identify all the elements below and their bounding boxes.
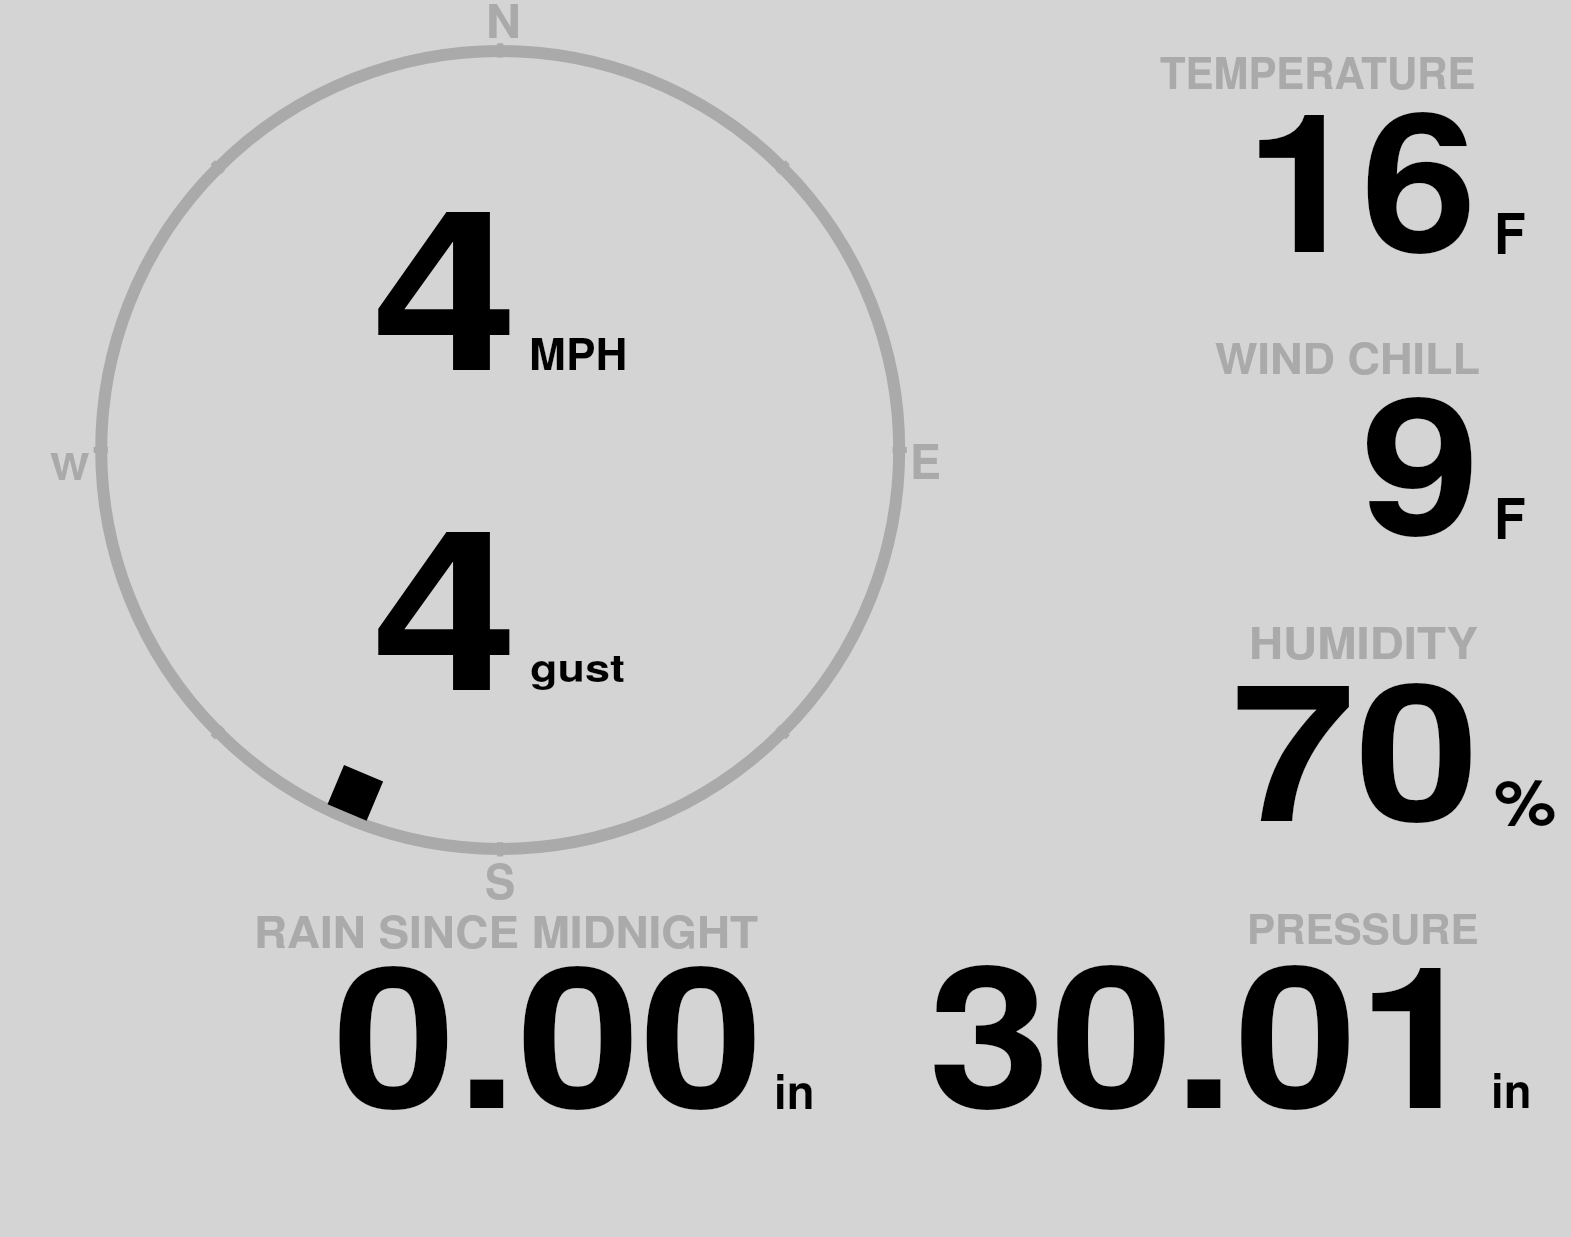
staticText: 70 bbox=[1231, 607, 1480, 879]
staticText: F bbox=[1494, 191, 1526, 271]
staticText: 4 bbox=[372, 119, 518, 438]
staticText: WIND CHILL bbox=[1215, 326, 1481, 387]
staticText: N bbox=[486, 0, 522, 52]
button[interactable]: Humidity 70 percent bbox=[1100, 610, 1571, 850]
staticText: 4 bbox=[372, 439, 518, 758]
button[interactable]: Pressure 30.01 inches bbox=[900, 900, 1571, 1130]
staticText: PRESSURE bbox=[1247, 898, 1478, 957]
button[interactable]: Temperature 16 degrees F bbox=[1100, 40, 1571, 280]
staticText: gust bbox=[530, 638, 625, 694]
staticText: 9 bbox=[1361, 321, 1480, 593]
staticText: W bbox=[50, 438, 90, 491]
staticText: 30.01 bbox=[928, 886, 1480, 1168]
staticText: 0.00 bbox=[333, 888, 763, 1168]
staticText: S bbox=[485, 845, 516, 914]
staticText: E bbox=[910, 424, 941, 494]
staticText: in bbox=[1491, 1055, 1532, 1122]
staticText: % bbox=[1494, 754, 1557, 845]
staticText: in bbox=[774, 1056, 815, 1123]
staticText: TEMPERATURE bbox=[1160, 40, 1476, 103]
staticText: MPH bbox=[529, 320, 628, 383]
staticText: RAIN SINCE MIDNIGHT bbox=[254, 898, 758, 961]
button[interactable]: Wind speed and direction bbox=[94, 44, 906, 856]
button[interactable]: Wind chill 9 degrees F bbox=[1100, 325, 1571, 565]
staticText: HUMIDITY bbox=[1249, 610, 1479, 672]
staticText: 16 bbox=[1245, 35, 1478, 311]
staticText: F bbox=[1494, 476, 1526, 556]
button[interactable]: Rain since midnight 0.00 inches bbox=[220, 900, 880, 1130]
